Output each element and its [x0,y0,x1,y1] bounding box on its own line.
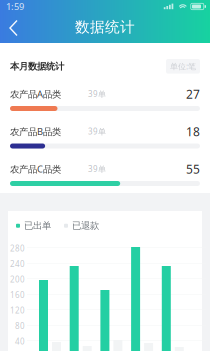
staticText: 40 [15,336,25,347]
staticText: 已退款 [72,220,99,231]
staticText: 单位:笔 [170,61,196,72]
staticText: 农产品A品类 [10,88,61,100]
staticText: 39单 [88,164,106,174]
staticText: 200 [10,274,25,285]
staticText: 240 [10,258,25,269]
staticText: 39单 [88,89,106,99]
button[interactable]: Back [0,14,30,41]
staticText: 本月数据统计 [10,61,64,72]
staticText: 已出单 [24,220,51,231]
staticText: 120 [10,305,25,316]
staticText: 280 [10,243,25,254]
staticText: 18 [186,123,200,139]
staticText: 农产品B品类 [10,125,61,138]
staticText: 160 [10,289,25,300]
staticText: 数据统计 [75,18,135,36]
staticText: 80 [15,320,25,331]
staticText: 27 [186,86,200,102]
staticText: 1:59 [6,0,24,13]
staticText: 39单 [88,126,106,137]
staticText: 农产品C品类 [10,163,61,175]
staticText: 55 [186,161,200,177]
